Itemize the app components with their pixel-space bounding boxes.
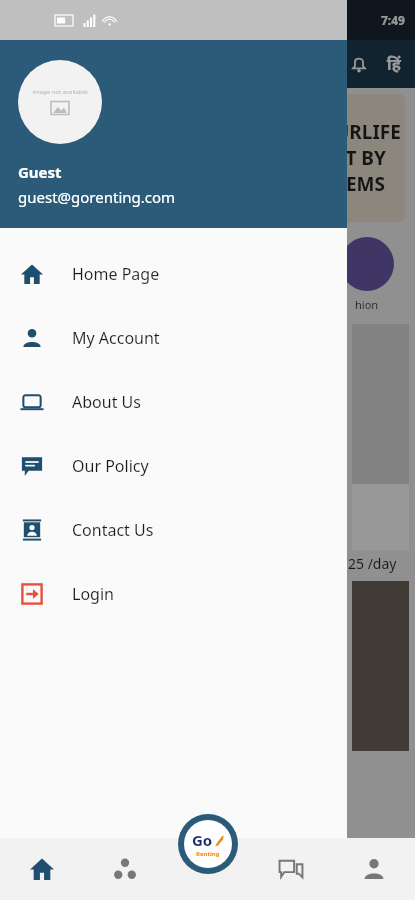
staticText: Our Policy [72, 455, 149, 477]
button[interactable]: Home Page [0, 242, 347, 306]
button[interactable]: My Account [0, 306, 347, 370]
button[interactable]: Categories [83, 838, 166, 900]
button[interactable]: About Us [0, 370, 347, 434]
button[interactable]: Home [0, 838, 83, 900]
staticText: Go [192, 830, 213, 850]
staticText: guest@gorenting.com [18, 187, 176, 207]
button[interactable]: Chat [249, 838, 332, 900]
button[interactable]: Go Renting [178, 814, 238, 874]
staticText: hion [355, 297, 379, 312]
staticText: Guest [18, 162, 62, 182]
button[interactable]: Our Policy [0, 434, 347, 498]
staticText: हिं [387, 53, 401, 75]
button[interactable]: Contact Us [0, 498, 347, 562]
staticText: TEMS [335, 171, 385, 197]
staticText: My Account [72, 327, 160, 349]
staticText: 7:49 [381, 12, 405, 28]
button[interactable]: Profile [332, 838, 415, 900]
staticText: Login [72, 583, 114, 605]
staticText: image not available [32, 88, 88, 96]
staticText: About Us [72, 391, 141, 413]
staticText: ST BY [335, 145, 386, 171]
staticText: Renting [196, 850, 220, 858]
staticText: Contact Us [72, 519, 154, 541]
button[interactable]: Login [0, 562, 347, 626]
staticText: 25 /day [348, 554, 397, 573]
staticText: Home Page [72, 263, 160, 285]
staticText: URLIFE [335, 119, 401, 145]
